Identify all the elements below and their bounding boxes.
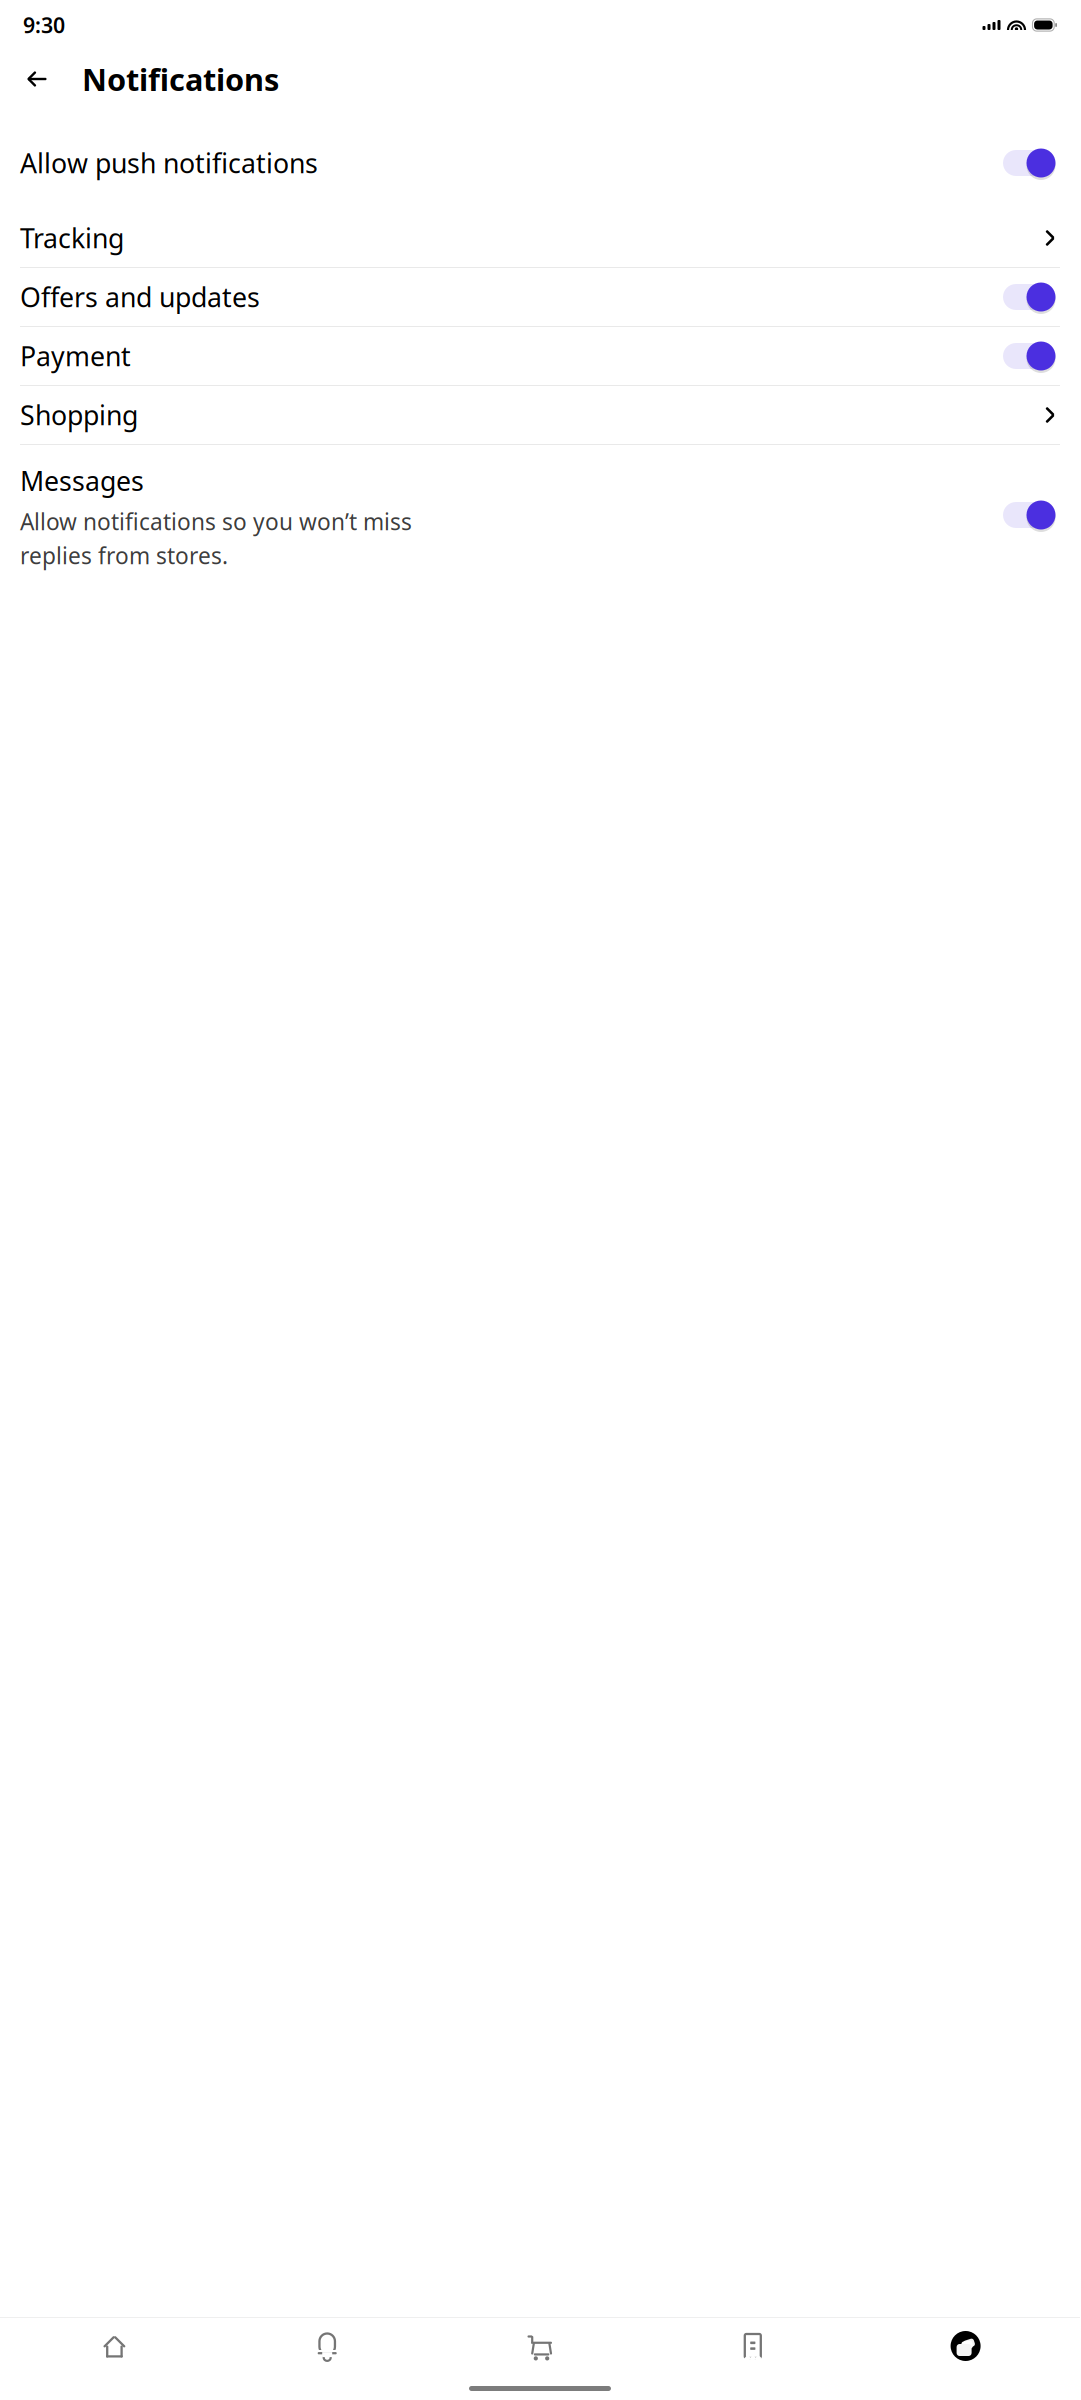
button[interactable]: Cart (434, 2318, 646, 2374)
button[interactable]: Tracking (0, 209, 1080, 267)
button[interactable]: Offers and updates (0, 268, 1080, 326)
button[interactable]: Home (8, 2318, 221, 2374)
button[interactable]: Profile (859, 2318, 1072, 2374)
staticText: 9:30 (23, 11, 65, 39)
staticText: Allow notifications so you won’t miss (20, 506, 412, 536)
staticText: replies from stores. (20, 540, 228, 571)
staticText: Notifications (82, 59, 279, 99)
staticText: Shopping (20, 397, 138, 433)
staticText: Offers and updates (20, 279, 260, 315)
button[interactable]: Orders (646, 2318, 859, 2374)
staticText: Tracking (20, 220, 124, 256)
button[interactable]: Notifications (221, 2318, 434, 2374)
staticText: Payment (20, 338, 131, 374)
button[interactable]: Back (14, 56, 60, 102)
button[interactable]: Messages (0, 445, 1080, 587)
button[interactable]: Allow push notifications (0, 134, 1080, 192)
staticText: Messages (20, 463, 144, 498)
button[interactable]: Payment (0, 327, 1080, 385)
button[interactable]: Shopping (0, 386, 1080, 444)
staticText: Allow push notifications (20, 145, 318, 181)
